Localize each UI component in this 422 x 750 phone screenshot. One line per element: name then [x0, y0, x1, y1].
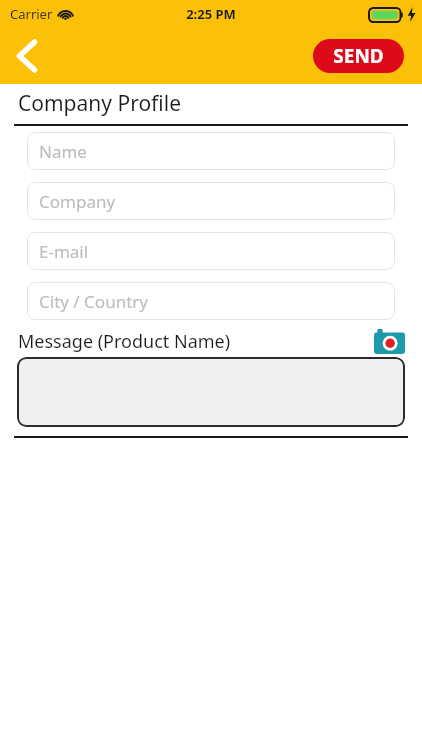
- staticText: 2:25 PM: [186, 5, 236, 23]
- button[interactable]: Name: [27, 132, 395, 170]
- staticText: Company Profile: [18, 89, 182, 118]
- button[interactable]: E-mail: [27, 232, 395, 270]
- button[interactable]: Back: [0, 29, 54, 83]
- staticText: Company: [39, 190, 116, 213]
- staticText: SEND: [333, 43, 384, 69]
- button[interactable]: [17, 357, 405, 427]
- staticText: City / Country: [39, 290, 148, 313]
- staticText: Carrier: [10, 5, 53, 23]
- staticText: E-mail: [39, 240, 89, 263]
- staticText: Name: [39, 140, 87, 163]
- button[interactable]: SEND: [313, 39, 404, 73]
- button[interactable]: Take photo: [374, 329, 405, 354]
- button[interactable]: Company: [27, 182, 395, 220]
- staticText: Message (Product Name): [18, 329, 231, 354]
- button[interactable]: City / Country: [27, 282, 395, 320]
